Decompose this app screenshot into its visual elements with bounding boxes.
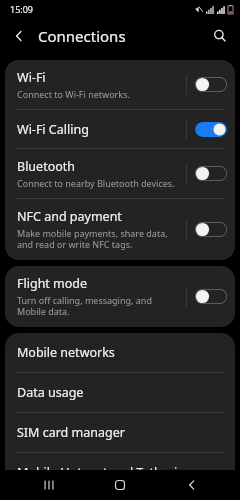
staticText: Data usage — [17, 384, 84, 401]
button[interactable]: SIM card manager — [5, 413, 235, 452]
button[interactable]: Wi-Fi Calling — [5, 110, 235, 148]
button[interactable]: Search — [205, 21, 235, 51]
button[interactable]: Off — [195, 289, 227, 304]
staticText: Mobile networks — [17, 344, 115, 361]
staticText: Mobile Hotspot and Tethering — [17, 464, 193, 481]
staticText: SIM card manager — [17, 424, 125, 441]
button[interactable]: NFC and payment — [5, 199, 235, 260]
staticText: Bluetooth — [17, 158, 76, 175]
staticText: Wi-Fi Calling — [17, 121, 89, 138]
button[interactable]: Home — [97, 471, 143, 499]
button[interactable]: Mobile Hotspot and Tethering — [5, 453, 235, 492]
staticText: Connect to nearby Bluetooth devices. — [17, 177, 175, 189]
button[interactable]: Off — [195, 222, 227, 237]
button[interactable]: Wi-Fi — [5, 60, 235, 109]
staticText: Connections — [38, 26, 126, 46]
button[interactable]: Bluetooth — [5, 149, 235, 198]
button[interactable]: Mobile networks — [5, 333, 235, 372]
button[interactable]: Back — [4, 21, 34, 51]
staticText: Make mobile payments, share data, and re… — [17, 227, 180, 251]
button[interactable]: Off — [195, 166, 227, 181]
staticText: Flight mode — [17, 275, 88, 292]
button[interactable]: Back — [169, 471, 215, 499]
button[interactable]: Off — [195, 77, 227, 92]
button[interactable]: Flight mode — [5, 266, 235, 327]
button[interactable]: On — [195, 122, 227, 137]
button[interactable]: Recents — [26, 471, 72, 499]
button[interactable]: Data usage — [5, 373, 235, 412]
staticText: Wi-Fi — [17, 69, 46, 86]
staticText: Turn off calling, messaging, and Mobile … — [17, 294, 180, 318]
staticText: NFC and payment — [17, 208, 122, 225]
staticText: Connect to Wi-Fi networks. — [17, 88, 130, 100]
staticText: 15:09 — [10, 3, 34, 15]
